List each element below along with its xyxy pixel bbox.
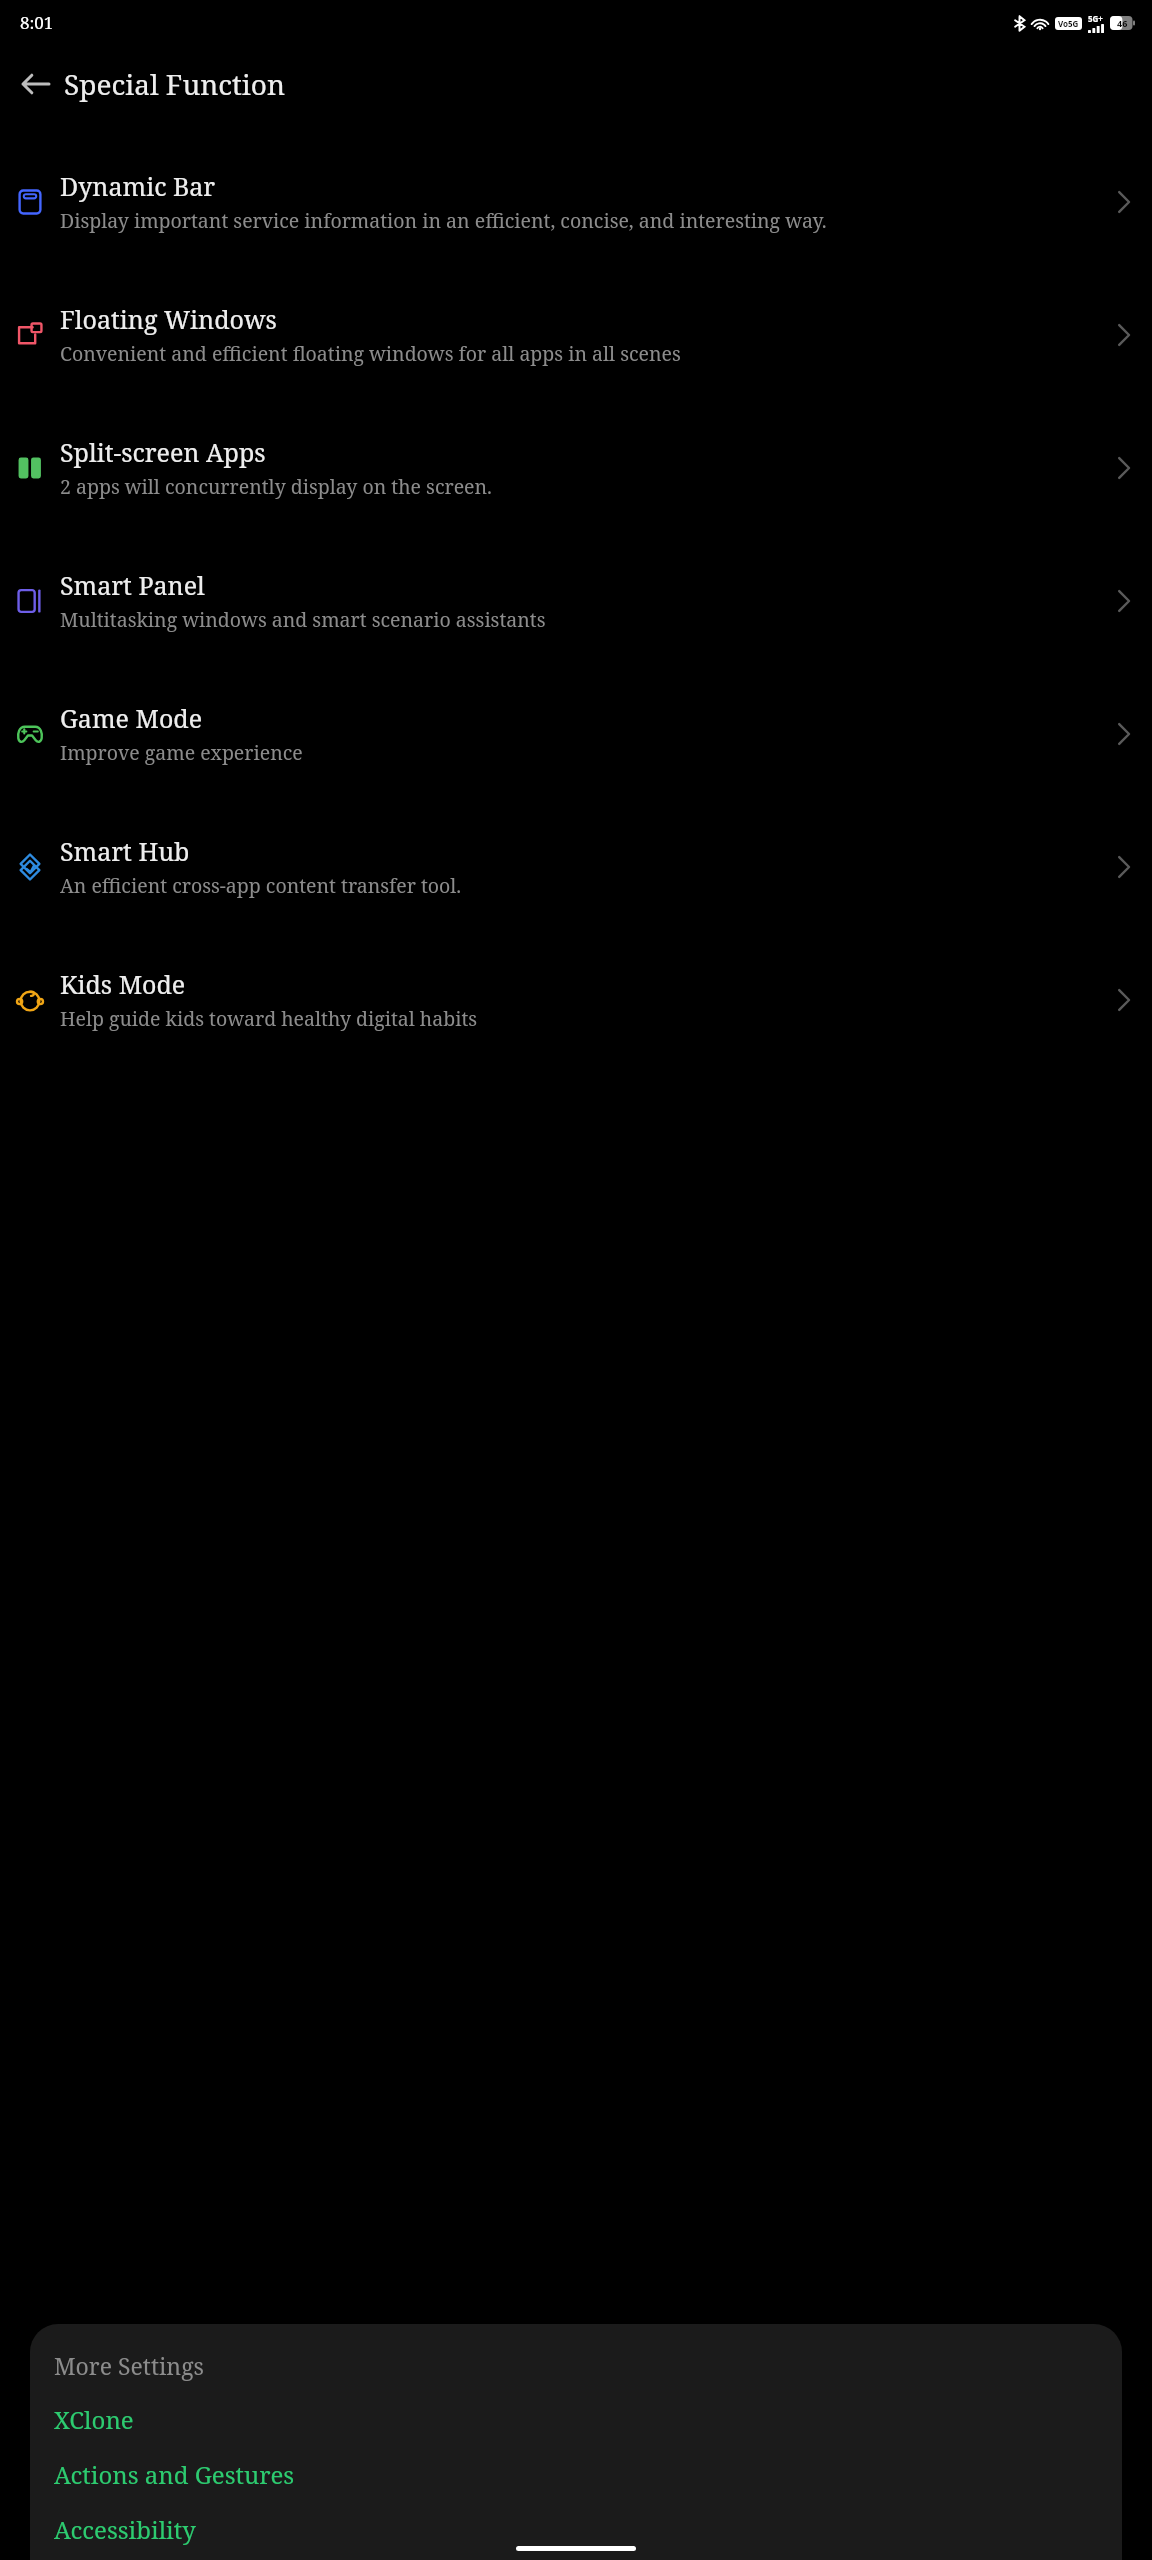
button[interactable]: Actions and Gestures	[54, 2458, 1122, 2491]
staticText: Dynamic Bar	[60, 169, 216, 203]
button[interactable]: Kids Mode	[0, 933, 1152, 1066]
staticText: Convenient and efficient floating window…	[60, 340, 681, 367]
button[interactable]: Dynamic Bar	[0, 135, 1152, 268]
button[interactable]: Floating Windows	[0, 268, 1152, 401]
staticText: An efficient cross-app content transfer …	[60, 872, 462, 899]
staticText: Smart Panel	[60, 568, 205, 602]
button[interactable]: Smart Hub	[0, 800, 1152, 933]
staticText: Vo5G	[1058, 18, 1079, 29]
staticText: Split-screen Apps	[60, 435, 266, 469]
staticText: Floating Windows	[60, 302, 277, 336]
staticText: Special Function	[64, 65, 286, 103]
staticText: Accessibility	[54, 2513, 196, 2546]
staticText: Game Mode	[60, 701, 203, 735]
staticText: 46	[1117, 17, 1128, 29]
staticText: More Settings	[54, 2350, 204, 2381]
button[interactable]: XClone	[54, 2403, 1122, 2436]
button[interactable]: Split-screen Apps	[0, 401, 1152, 534]
staticText: Multitasking windows and smart scenario …	[60, 606, 546, 633]
staticText: Help guide kids toward healthy digital h…	[60, 1005, 478, 1032]
staticText: Smart Hub	[60, 834, 190, 868]
staticText: 5G+	[1088, 13, 1103, 24]
staticText: Kids Mode	[60, 967, 186, 1001]
staticText: Actions and Gestures	[54, 2458, 295, 2491]
staticText: 2 apps will concurrently display on the …	[60, 473, 492, 500]
button[interactable]: Game Mode	[0, 667, 1152, 800]
staticText: Display important service information in…	[60, 207, 827, 234]
staticText: Improve game experience	[60, 739, 303, 766]
staticText: XClone	[54, 2403, 134, 2436]
button[interactable]: Smart Panel	[0, 534, 1152, 667]
button[interactable]: Accessibility	[54, 2513, 1122, 2546]
button[interactable]: Back	[14, 62, 58, 106]
staticText: 8:01	[20, 11, 54, 34]
